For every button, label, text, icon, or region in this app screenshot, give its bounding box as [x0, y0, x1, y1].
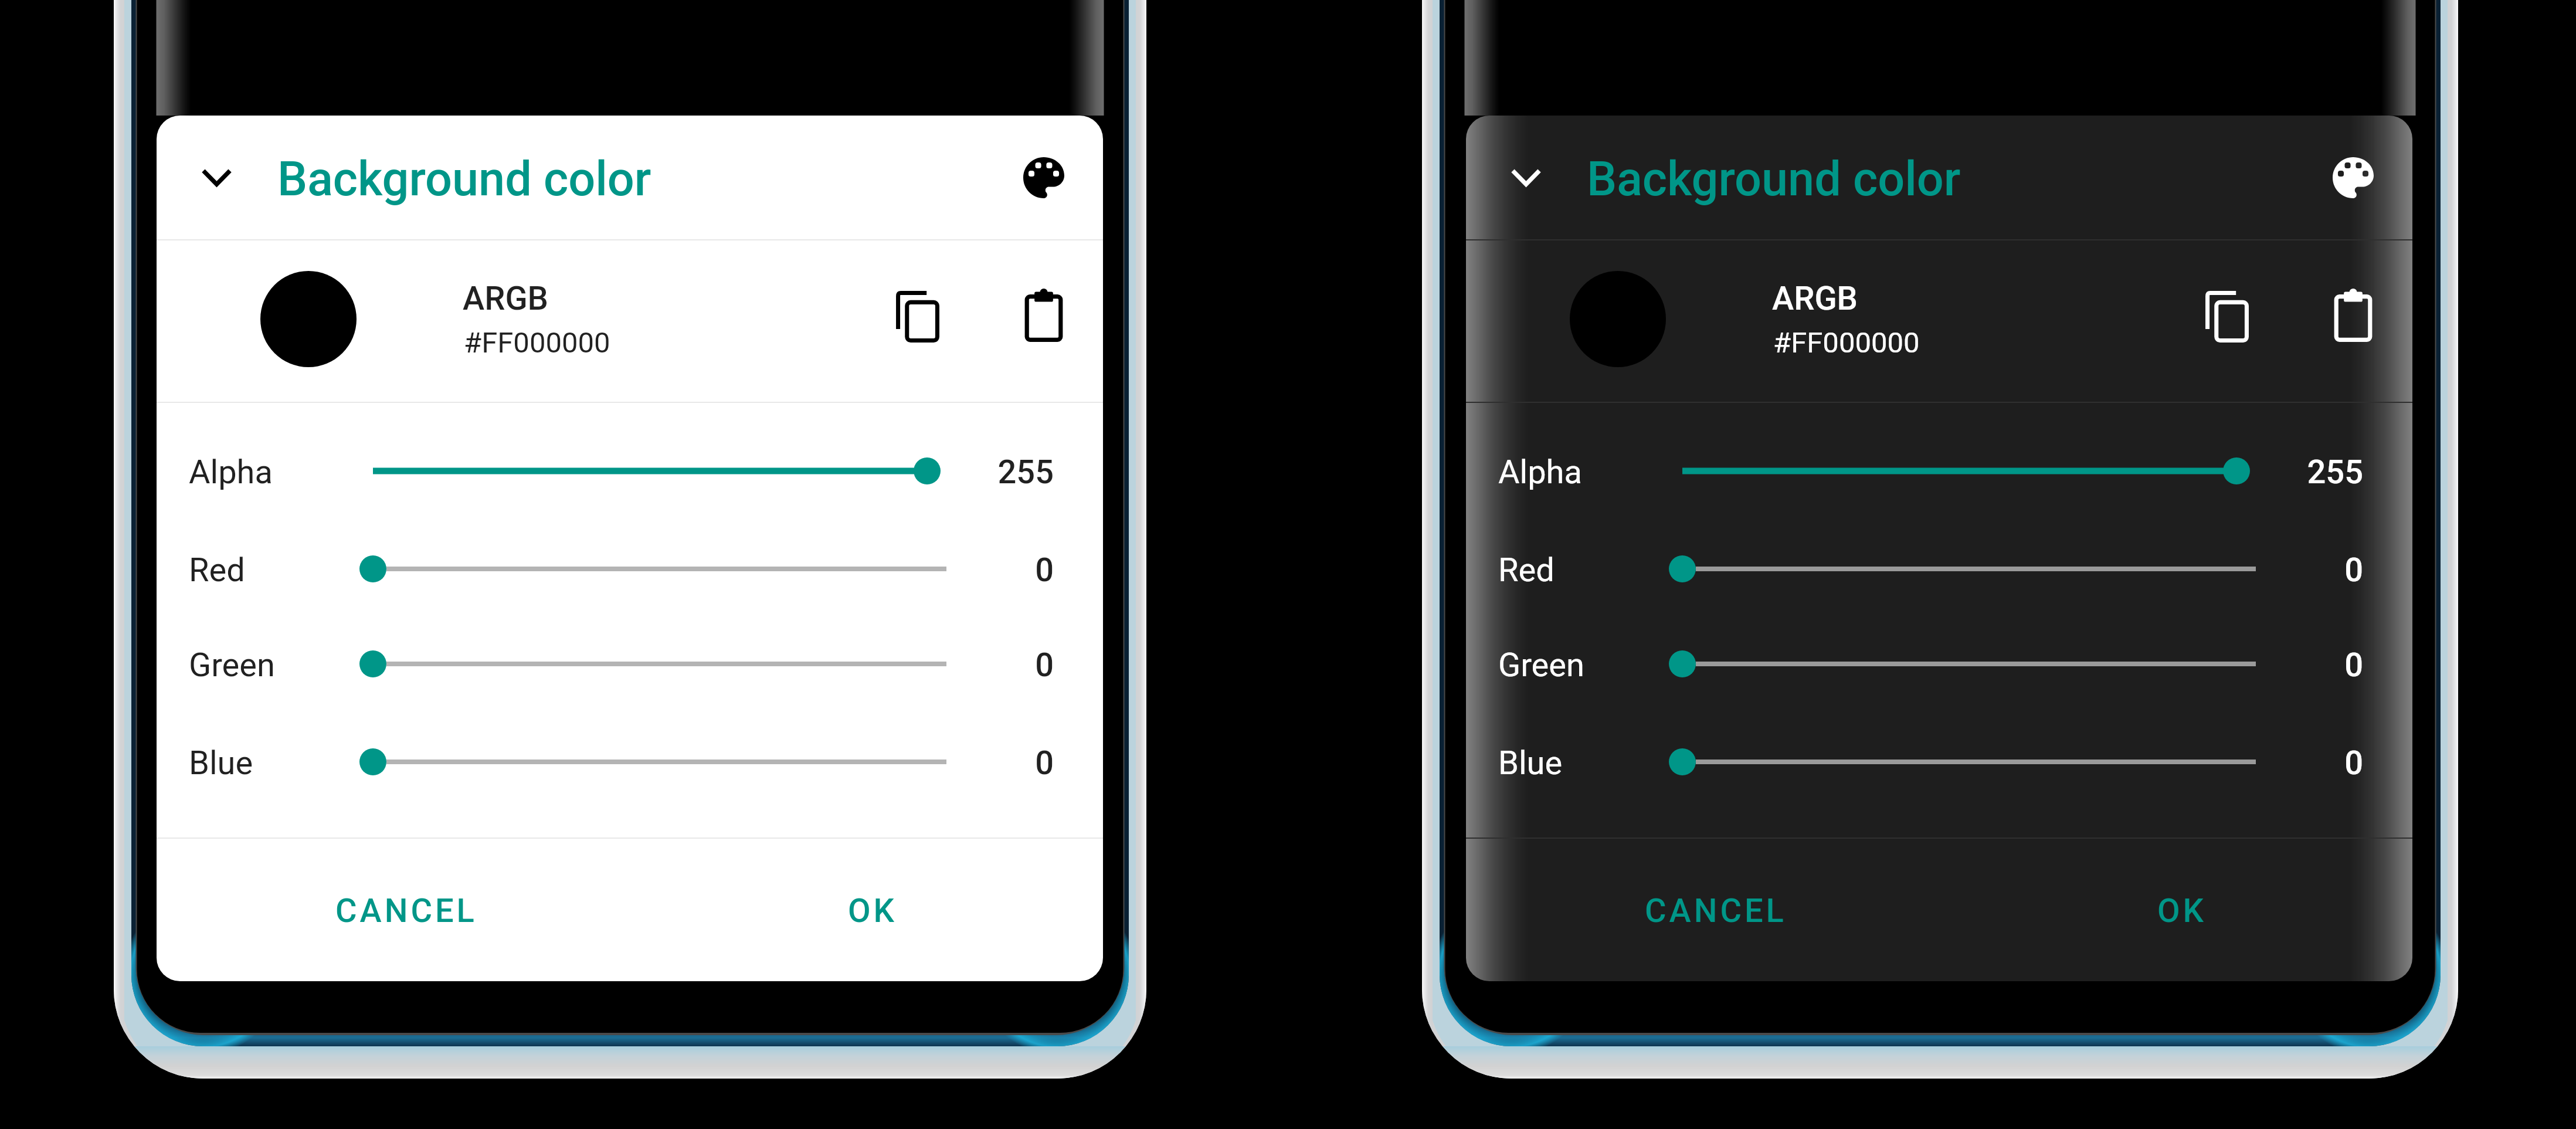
staticText: Alpha	[1498, 453, 1582, 491]
button[interactable]: Open color palette	[2317, 141, 2390, 214]
staticText: Red	[189, 551, 245, 589]
staticText: ARGB	[463, 279, 548, 318]
staticText: Green	[1498, 646, 1584, 684]
button[interactable]: Paste color code	[1007, 279, 1080, 352]
staticText: 0	[1035, 551, 1054, 589]
staticText: Green	[189, 646, 275, 684]
staticText: #FF000000	[464, 326, 610, 360]
staticText: CANCEL	[1645, 891, 1787, 930]
staticText: 255	[2307, 453, 2363, 491]
button[interactable]: CANCEL	[308, 870, 504, 952]
staticText: OK	[2157, 891, 2207, 930]
button[interactable]: Paste color code	[2317, 279, 2390, 352]
button[interactable]	[338, 629, 983, 699]
button[interactable]: Copy color code	[2191, 280, 2263, 353]
button[interactable]	[1648, 436, 2293, 506]
staticText: 255	[997, 453, 1054, 491]
staticText: Background color	[1587, 151, 1961, 207]
button[interactable]	[338, 534, 983, 604]
staticText: 0	[2344, 744, 2363, 782]
button[interactable]	[338, 727, 983, 797]
button[interactable]: Background color	[157, 116, 1103, 239]
staticText: 0	[2344, 646, 2363, 684]
button[interactable]: CANCEL	[1618, 870, 1814, 952]
button[interactable]: OK	[2109, 870, 2255, 952]
staticText: Blue	[1498, 744, 1563, 782]
button[interactable]: Copy color code	[881, 280, 954, 353]
staticText: ARGB	[1772, 279, 1858, 318]
staticText: 0	[1035, 646, 1054, 684]
staticText: Red	[1498, 551, 1555, 589]
button[interactable]: OK	[799, 870, 946, 952]
staticText: Blue	[189, 744, 253, 782]
button[interactable]	[1648, 727, 2293, 797]
button[interactable]	[338, 436, 983, 506]
button[interactable]	[1648, 534, 2293, 604]
staticText: CANCEL	[335, 891, 477, 930]
button[interactable]: Open color palette	[1007, 141, 1080, 214]
staticText: 0	[2344, 551, 2363, 589]
staticText: OK	[848, 891, 897, 930]
button[interactable]	[1648, 629, 2293, 699]
staticText: #FF000000	[1773, 326, 1920, 360]
staticText: Alpha	[189, 453, 273, 491]
staticText: 0	[1035, 744, 1054, 782]
staticText: Background color	[277, 151, 651, 207]
button[interactable]: Background color	[1466, 116, 2412, 239]
